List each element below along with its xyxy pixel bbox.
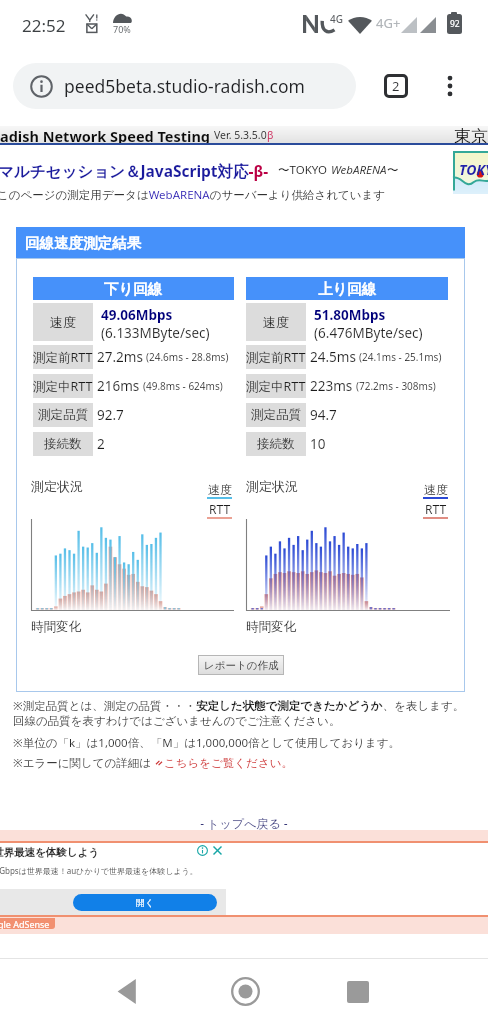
staticText: 223ms	[310, 377, 353, 395]
staticText: 測定前RTT	[246, 349, 306, 366]
button[interactable]: こちらをご覧ください。	[164, 756, 293, 770]
staticText: 接続数	[44, 436, 82, 452]
staticText: RTT	[209, 501, 231, 517]
staticText: マルチセッション＆JavaScript対応-β-	[0, 160, 269, 181]
staticText: 216ms	[97, 377, 140, 395]
staticText: 4G	[330, 12, 343, 26]
staticText: Ver. 5.3.5.0	[214, 128, 267, 142]
staticText: 回線速度測定結果	[25, 234, 141, 252]
staticText: ※単位の「k」は1,000倍、「M」は1,000,000倍として使用しております…	[13, 735, 401, 751]
staticText: 回線の品質を表すわけではございませんのでご注意ください。	[13, 714, 341, 728]
staticText: 接続数	[257, 436, 295, 452]
staticText: (49.8ms - 624ms)	[143, 379, 223, 393]
button[interactable]: - トップへ戻る -	[196, 813, 292, 833]
staticText: 2	[392, 77, 400, 95]
button[interactable]: Home	[215, 959, 275, 1024]
button[interactable]: 世界最速を体験しよう	[0, 843, 226, 889]
staticText: 速度	[50, 314, 76, 330]
button[interactable]: Recents	[328, 959, 388, 1024]
staticText: 速度	[208, 482, 232, 497]
staticText: 測定中RTT	[33, 378, 93, 395]
staticText: このページの測定用データはWebARENAのサーバーより供給されています	[0, 187, 386, 203]
staticText: (6.133MByte/sec)	[101, 324, 210, 342]
staticText: TOKYO	[459, 160, 488, 179]
staticText: (6.476MByte/sec)	[314, 324, 423, 342]
staticText: 94.7	[310, 406, 337, 424]
staticText: 世界最速を体験しよう	[0, 846, 99, 859]
button[interactable]: peed5beta.studio-radish.com	[13, 63, 356, 109]
staticText: 70%	[113, 23, 131, 35]
staticText: oogle AdSense	[0, 918, 50, 929]
staticText: (24.1ms - 25.1ms)	[359, 350, 442, 364]
staticText: 時間変化	[31, 619, 81, 635]
staticText: (24.6ms - 28.8ms)	[146, 350, 229, 364]
staticText: 2	[97, 435, 105, 453]
staticText: 〜TOKYO	[278, 162, 331, 178]
staticText: peed5beta.studio-radish.com	[64, 74, 305, 98]
staticText: ※測定品質とは、測定の品質・・・安定した状態で測定できたかどうか、を表します。	[13, 698, 465, 714]
staticText: 24.5ms	[310, 348, 356, 366]
button[interactable]: Close ad	[212, 845, 223, 856]
staticText: β	[267, 128, 274, 142]
staticText: 4G+	[376, 14, 401, 32]
staticText: 時間変化	[246, 619, 296, 635]
staticText: 東京	[454, 126, 488, 143]
staticText: RTT	[425, 501, 447, 517]
staticText: 22:52	[22, 14, 66, 37]
staticText: (72.2ms - 308ms)	[356, 379, 436, 393]
staticText: ※エラーに関しての詳細は	[13, 755, 155, 771]
staticText: 92.7	[97, 406, 124, 424]
staticText: 測定品質	[251, 407, 301, 423]
staticText: 開く	[136, 897, 155, 908]
button[interactable]: More options	[430, 66, 470, 106]
staticText: adish Network Speed Testing	[0, 126, 211, 143]
staticText: 10	[310, 435, 326, 453]
staticText: 測定品質	[38, 407, 88, 423]
staticText: 測定中RTT	[246, 378, 306, 395]
staticText: 上り回線	[318, 280, 377, 298]
button[interactable]: Back	[98, 959, 158, 1024]
button[interactable]: Tabs	[376, 66, 416, 106]
button[interactable]: Ad info	[197, 845, 208, 856]
staticText: 49.06Mbps	[101, 306, 173, 324]
staticText: 〜	[387, 163, 399, 177]
button[interactable]: レポートの作成	[198, 655, 284, 675]
button[interactable]: 開く	[73, 894, 217, 911]
staticText: 27.2ms	[97, 348, 143, 366]
staticText: 測定状況	[246, 478, 298, 494]
staticText: 測定前RTT	[33, 349, 93, 366]
staticText: 下り回線	[104, 280, 163, 298]
staticText: レポートの作成	[204, 659, 279, 672]
staticText: 速度	[424, 482, 448, 497]
staticText: WebARENA	[331, 162, 387, 178]
staticText: 10Gbpsは世界最速！auひかりで世界最速を体験しよう。	[0, 865, 198, 876]
staticText: 51.80Mbps	[314, 306, 386, 324]
staticText: 92	[450, 18, 460, 30]
staticText: 速度	[263, 314, 289, 330]
staticText: 測定状況	[31, 478, 83, 494]
